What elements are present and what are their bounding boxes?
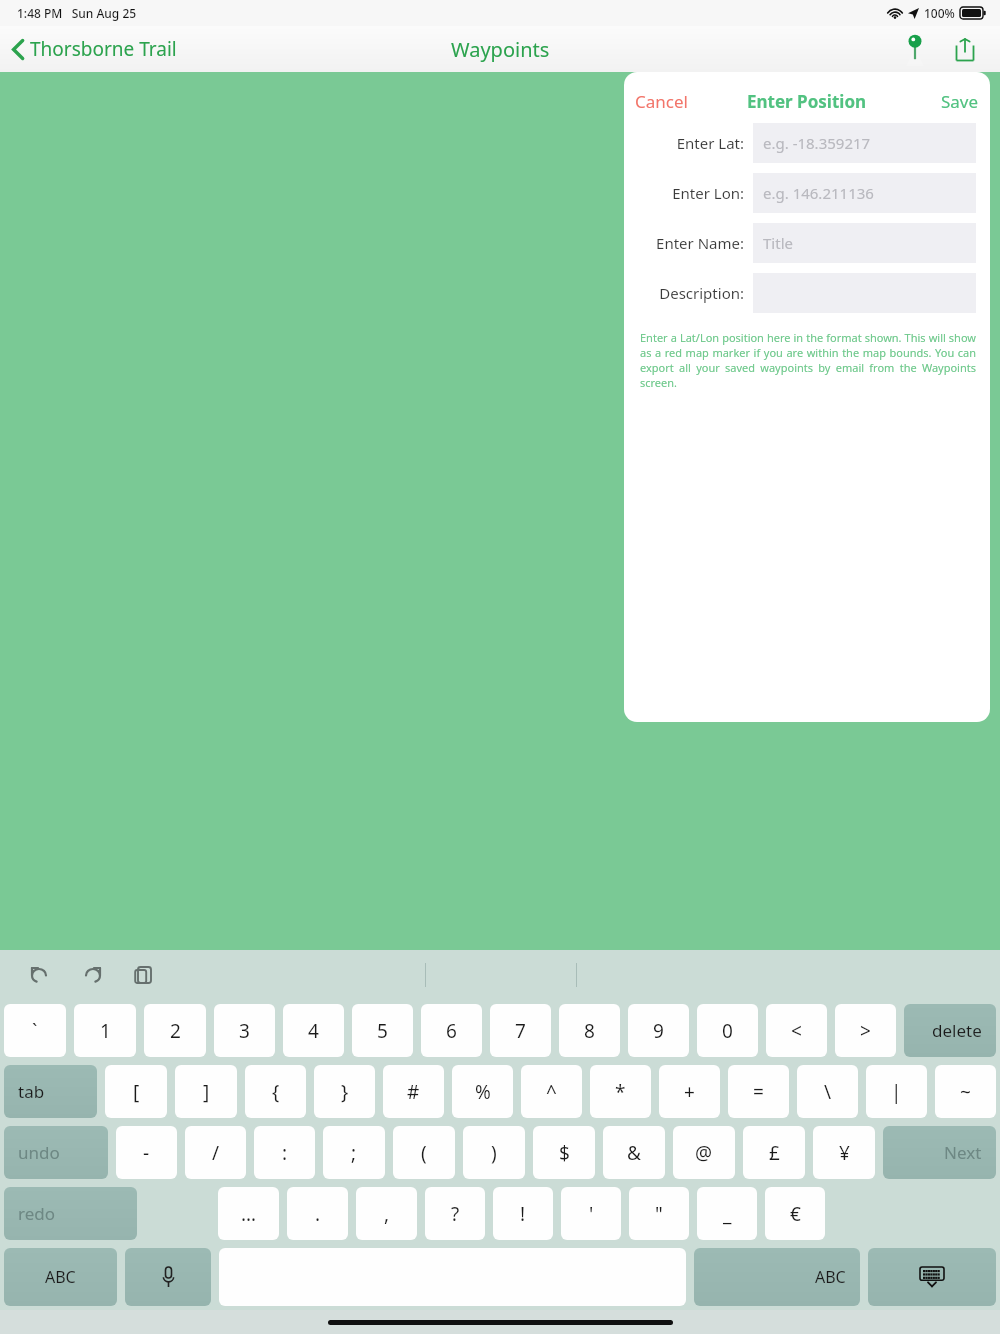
staticText: > (860, 1018, 871, 1044)
button[interactable]: 3 (214, 1004, 275, 1057)
button[interactable]: * (590, 1065, 651, 1118)
button[interactable]: e.g. -18.359217 (753, 123, 976, 163)
staticText: $ (559, 1140, 570, 1166)
button[interactable]: ! (493, 1187, 553, 1240)
button[interactable]: @ (673, 1126, 735, 1179)
staticText: / (212, 1140, 220, 1166)
staticText: tab (18, 1080, 45, 1103)
button[interactable]: & (603, 1126, 665, 1179)
button[interactable]: 1 (74, 1004, 136, 1057)
button[interactable]: + (659, 1065, 720, 1118)
button[interactable]: ; (323, 1126, 385, 1179)
button[interactable]: ^ (521, 1065, 582, 1118)
button[interactable]: ABC (694, 1248, 860, 1306)
button[interactable]: delete (904, 1004, 996, 1057)
staticText: ABC (815, 1266, 846, 1288)
button[interactable]: ( (393, 1126, 455, 1179)
other: Dictate (125, 1248, 211, 1306)
button[interactable]: Save (938, 90, 982, 113)
button[interactable]: 7 (490, 1004, 551, 1057)
button[interactable]: Thorsborne Trail (12, 36, 177, 62)
button[interactable]: $ (533, 1126, 595, 1179)
button[interactable]: ] (175, 1065, 237, 1118)
button[interactable]: Drop pin (898, 32, 932, 66)
button[interactable]: ¥ (813, 1126, 875, 1179)
staticText: . (315, 1201, 321, 1227)
button[interactable]: Hide keyboard (868, 1248, 996, 1306)
button[interactable]: = (728, 1065, 789, 1118)
button[interactable]: { (245, 1065, 306, 1118)
button[interactable]: 4 (283, 1004, 344, 1057)
button[interactable]: # (383, 1065, 444, 1118)
button[interactable]: ABC (4, 1248, 117, 1306)
staticText: ~ (960, 1079, 971, 1105)
button[interactable]: _ (697, 1187, 757, 1240)
button[interactable]: [ (105, 1065, 167, 1118)
button[interactable]: Dictate (125, 1248, 211, 1306)
button[interactable]: 2 (144, 1004, 206, 1057)
button[interactable]: 5 (352, 1004, 413, 1057)
staticText: ( (421, 1140, 427, 1166)
button[interactable]: 6 (421, 1004, 482, 1057)
staticText: ABC (45, 1266, 76, 1288)
staticText: * (615, 1079, 626, 1105)
button[interactable]: undo (4, 1126, 108, 1179)
staticText: e.g. 146.211136 (763, 183, 874, 203)
staticText: 1:48 PM Sun Aug 25 (17, 5, 137, 21)
staticText: 100% (924, 5, 955, 21)
button[interactable]: ` (4, 1004, 66, 1057)
staticText: £ (769, 1140, 780, 1166)
staticText: + (684, 1079, 695, 1105)
button[interactable]: > (835, 1004, 896, 1057)
staticText: 5 (377, 1018, 388, 1044)
button[interactable]: Redo (74, 957, 110, 993)
staticText: 8 (584, 1018, 595, 1044)
button[interactable]: - (116, 1126, 177, 1179)
button[interactable]: % (452, 1065, 513, 1118)
button[interactable]: tab (4, 1065, 97, 1118)
button[interactable]: : (254, 1126, 315, 1179)
staticText: [ (133, 1079, 140, 1105)
staticText: € (790, 1201, 801, 1227)
button[interactable]: 0 (697, 1004, 758, 1057)
staticText: ? (451, 1201, 460, 1227)
button[interactable]: Title (753, 223, 976, 263)
button[interactable]: < (766, 1004, 827, 1057)
staticText: 7 (515, 1018, 526, 1044)
button[interactable]: . (287, 1187, 348, 1240)
button[interactable]: \ (797, 1065, 858, 1118)
button[interactable]: … (218, 1187, 279, 1240)
staticText: Thorsborne Trail (30, 36, 177, 62)
staticText: @ (695, 1140, 713, 1166)
button[interactable]: } (314, 1065, 375, 1118)
button[interactable]: Cancel (632, 90, 691, 113)
button[interactable]: / (185, 1126, 246, 1179)
staticText: 0 (722, 1018, 733, 1044)
button[interactable]: 8 (559, 1004, 620, 1057)
button[interactable]: € (765, 1187, 825, 1240)
button[interactable]: ) (463, 1126, 525, 1179)
button[interactable]: Paste (126, 957, 162, 993)
button[interactable]: " (629, 1187, 689, 1240)
button[interactable]: Next (883, 1126, 996, 1179)
staticText: Enter Lon: (640, 183, 744, 203)
button[interactable]: ~ (935, 1065, 996, 1118)
other: Hide keyboard (868, 1248, 996, 1306)
button[interactable]: 9 (628, 1004, 689, 1057)
button[interactable]: Undo (22, 957, 58, 993)
button[interactable]: £ (743, 1126, 805, 1179)
button[interactable]: | (866, 1065, 927, 1118)
staticText: { (272, 1079, 280, 1105)
staticText: , (384, 1201, 390, 1227)
button[interactable]: ? (425, 1187, 485, 1240)
button[interactable]: redo (4, 1187, 137, 1240)
button[interactable]: Share (948, 32, 982, 66)
button[interactable]: e.g. 146.211136 (753, 173, 976, 213)
staticText: | (891, 1079, 902, 1105)
staticText: & (627, 1140, 641, 1166)
staticText: " (655, 1201, 663, 1227)
button[interactable]: , (356, 1187, 417, 1240)
button[interactable]: ' (561, 1187, 621, 1240)
